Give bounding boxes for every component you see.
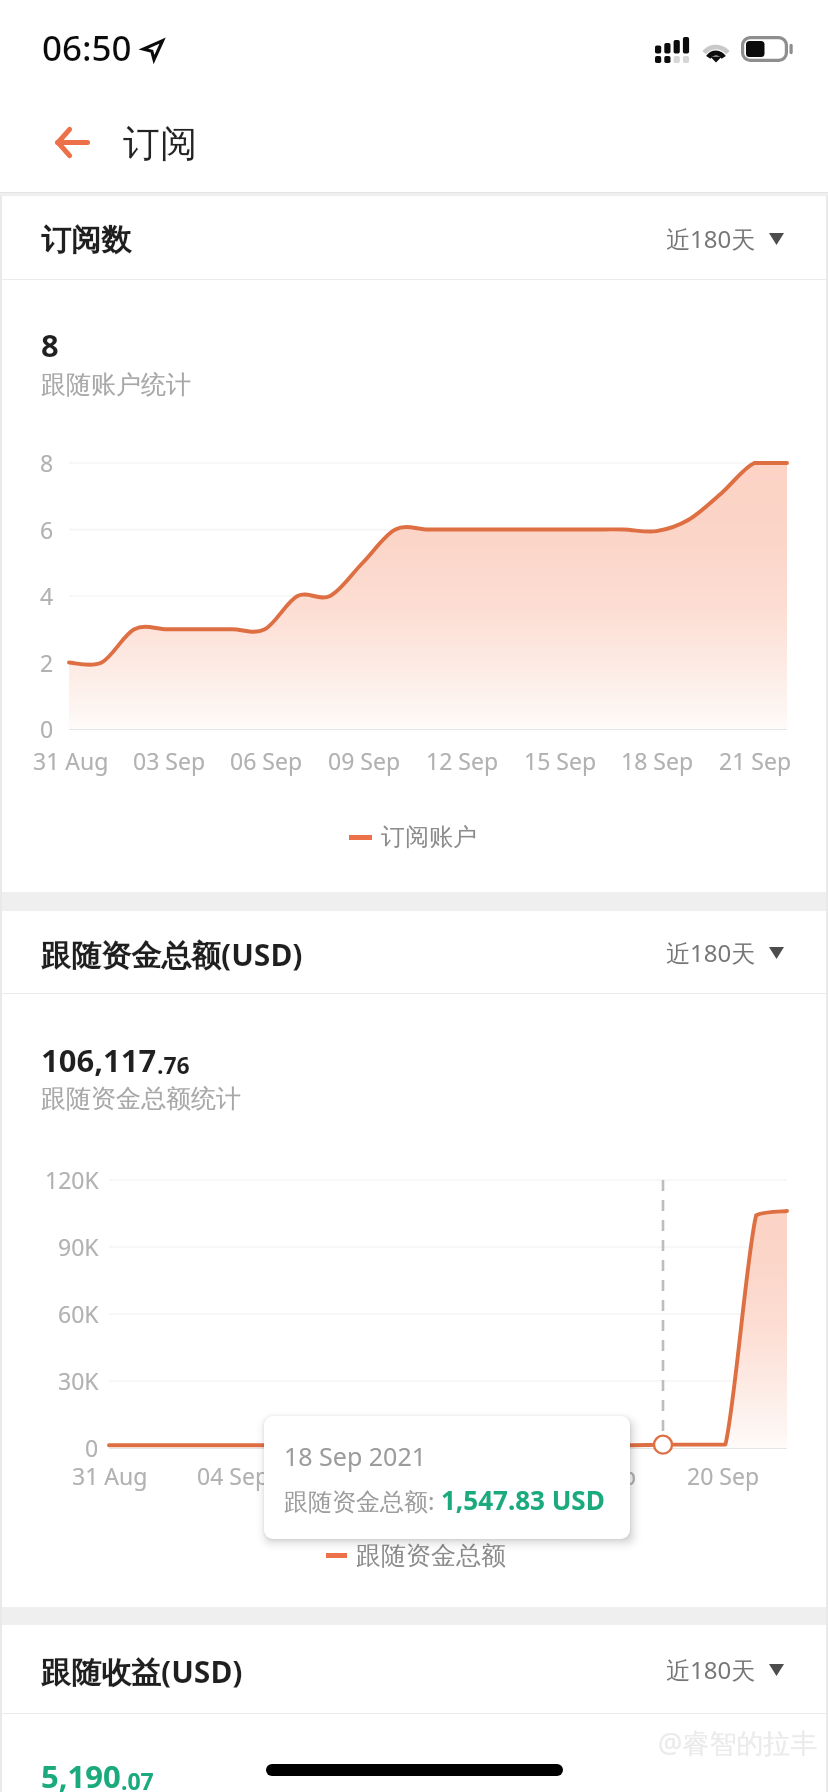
- staticText: 18 Sep: [621, 745, 694, 776]
- staticText: 订阅数: [41, 221, 131, 259]
- staticText: 03 Sep: [133, 745, 206, 776]
- staticText: 跟随资金总额: [356, 1540, 506, 1571]
- staticText: 0: [40, 713, 54, 744]
- staticText: 5,190: [41, 1755, 121, 1792]
- staticText: @睿智的拉丰: [658, 1724, 818, 1761]
- staticText: 18 Sep 2021: [284, 1439, 427, 1473]
- staticText: 08 Sep: [319, 1460, 392, 1491]
- staticText: 4: [40, 580, 54, 611]
- staticText: 21 Sep: [719, 745, 792, 776]
- staticText: 90K: [58, 1231, 99, 1262]
- staticText: 跟随账户统计: [41, 369, 191, 400]
- staticText: 跟随资金总额:: [284, 1484, 441, 1517]
- button[interactable]: 近180天: [666, 1653, 784, 1686]
- staticText: 60K: [58, 1298, 99, 1329]
- staticText: 8: [40, 447, 54, 478]
- staticText: 近180天: [666, 222, 756, 255]
- staticText: 120K: [45, 1164, 99, 1195]
- staticText: 12 Sep: [426, 745, 499, 776]
- staticText: 31 Aug: [33, 745, 109, 776]
- staticText: 15 Sep: [524, 745, 597, 776]
- staticText: 订阅账户: [381, 822, 477, 852]
- staticText: 06:50: [42, 24, 132, 72]
- staticText: 6: [40, 514, 54, 545]
- staticText: 0: [85, 1432, 99, 1463]
- staticText: 04 Sep: [197, 1460, 270, 1491]
- staticText: 16 Sep: [564, 1460, 637, 1491]
- staticText: 20 Sep: [687, 1460, 760, 1491]
- button[interactable]: Back: [22, 92, 122, 193]
- staticText: 106,117: [41, 1039, 157, 1081]
- staticText: 跟随资金总额(USD): [41, 934, 303, 975]
- staticText: 跟随资金总额统计: [41, 1083, 241, 1114]
- staticText: 2: [40, 647, 54, 678]
- staticText: 31 Aug: [72, 1460, 148, 1491]
- staticText: 近180天: [666, 936, 756, 969]
- staticText: 跟随收益(USD): [41, 1651, 243, 1692]
- staticText: 8: [41, 324, 59, 366]
- staticText: .76: [157, 1049, 190, 1080]
- staticText: 近180天: [666, 1653, 756, 1686]
- button[interactable]: 近180天: [666, 222, 784, 255]
- staticText: 06 Sep: [230, 745, 303, 776]
- staticText: .07: [121, 1765, 154, 1792]
- staticText: 09 Sep: [328, 745, 401, 776]
- staticText: 1,547.83 USD: [441, 1482, 605, 1517]
- staticText: 订阅: [123, 120, 197, 167]
- button[interactable]: 近180天: [666, 936, 784, 969]
- staticText: 30K: [58, 1365, 99, 1396]
